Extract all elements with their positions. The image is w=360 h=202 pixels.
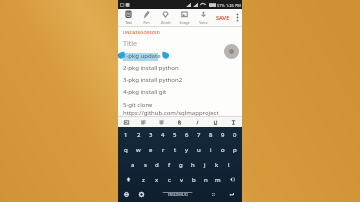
- button[interactable]: n: [200, 172, 212, 187]
- button[interactable]: c: [163, 172, 176, 187]
- staticText: 4: [161, 131, 165, 139]
- button[interactable]: y: [181, 142, 193, 157]
- button[interactable]: q: [119, 142, 132, 157]
- button[interactable]: z: [137, 172, 150, 187]
- staticText: SAVE: [216, 14, 230, 21]
- staticText: 5: [173, 131, 177, 139]
- button[interactable]: e: [145, 142, 157, 157]
- button[interactable]: s: [139, 157, 151, 172]
- button[interactable]: h: [187, 157, 199, 172]
- staticText: 9: [221, 131, 225, 139]
- staticText: a: [131, 161, 135, 169]
- button[interactable]: x: [150, 172, 163, 187]
- staticText: 5-git clone: [123, 101, 153, 109]
- button[interactable]: 1: [119, 127, 132, 142]
- button[interactable]: Space: [151, 189, 204, 200]
- button[interactable]: Voice recording: [224, 44, 239, 59]
- button[interactable]: Bold: [170, 117, 188, 127]
- button[interactable]: Align left: [135, 117, 152, 127]
- staticText: h: [191, 161, 195, 169]
- button[interactable]: 0: [229, 127, 241, 142]
- staticText: ENGLISH(UK): [168, 193, 188, 197]
- button[interactable]: j: [199, 157, 211, 172]
- staticText: 2-pkg install python: [123, 64, 179, 72]
- button[interactable]: Italic: [188, 117, 206, 127]
- staticText: Voice: [199, 20, 208, 25]
- button[interactable]: a: [126, 157, 139, 172]
- staticText: y: [185, 146, 189, 154]
- button[interactable]: Underline: [206, 117, 224, 127]
- button[interactable]: b: [188, 172, 200, 187]
- staticText: 6: [185, 131, 189, 139]
- staticText: e: [149, 146, 153, 154]
- staticText: Brush: [161, 20, 171, 25]
- staticText: w: [136, 146, 141, 154]
- button[interactable]: o: [217, 142, 229, 157]
- staticText: v: [180, 176, 184, 184]
- button[interactable]: f: [163, 157, 175, 172]
- button[interactable]: Insert image: [118, 117, 135, 127]
- button[interactable]: t: [169, 142, 181, 157]
- button[interactable]: Settings: [134, 187, 149, 202]
- button[interactable]: 8: [205, 127, 217, 142]
- button[interactable]: w: [132, 142, 145, 157]
- staticText: t: [174, 146, 177, 154]
- staticText: Text: [125, 20, 132, 25]
- staticText: 2: [137, 131, 141, 139]
- button[interactable]: u: [193, 142, 205, 157]
- staticText: n: [204, 176, 208, 184]
- button[interactable]: r: [157, 142, 169, 157]
- button[interactable]: Backspace: [224, 172, 241, 187]
- staticText: j: [204, 161, 206, 169]
- button[interactable]: 5: [169, 127, 181, 142]
- button[interactable]: Emoji: [206, 187, 221, 202]
- button[interactable]: Voice: [194, 9, 213, 26]
- staticText: r: [162, 146, 165, 154]
- staticText: Image: [179, 20, 190, 25]
- button[interactable]: d: [151, 157, 163, 172]
- button[interactable]: Shift: [119, 172, 137, 187]
- button[interactable]: m: [212, 172, 224, 187]
- staticText: 0: [233, 131, 237, 139]
- button[interactable]: l: [223, 157, 235, 172]
- staticText: l: [228, 161, 230, 169]
- button[interactable]: 7: [193, 127, 205, 142]
- button[interactable]: Pen: [137, 9, 156, 26]
- staticText: f: [168, 161, 171, 169]
- staticText: q: [124, 146, 128, 154]
- button[interactable]: SAVE: [213, 9, 233, 26]
- staticText: u: [197, 146, 201, 154]
- button[interactable]: Brush: [156, 9, 175, 26]
- button[interactable]: Text: [119, 9, 137, 26]
- button[interactable]: 4: [157, 127, 169, 142]
- staticText: i: [210, 146, 212, 154]
- staticText: c: [168, 176, 171, 184]
- button[interactable]: 9: [217, 127, 229, 142]
- staticText: 1-pkg update: [123, 52, 161, 60]
- button[interactable]: Align center: [152, 117, 170, 127]
- button[interactable]: Enter: [221, 187, 241, 202]
- staticText: k: [215, 161, 219, 169]
- button[interactable]: v: [176, 172, 188, 187]
- button[interactable]: 6: [181, 127, 193, 142]
- staticText: g: [179, 161, 183, 169]
- button[interactable]: i: [205, 142, 217, 157]
- button[interactable]: g: [175, 157, 187, 172]
- button[interactable]: 2: [132, 127, 145, 142]
- staticText: UNCATEGORIZED: [123, 30, 160, 36]
- staticText: z: [142, 176, 145, 184]
- staticText: p: [233, 146, 237, 154]
- button[interactable]: Image: [175, 9, 194, 26]
- staticText: https://github.com/sqlmapproject: [123, 109, 219, 116]
- staticText: 4-pkg install git: [123, 88, 167, 96]
- button[interactable]: p: [229, 142, 241, 157]
- button[interactable]: Text colour: [224, 117, 242, 127]
- button[interactable]: Change language: [119, 187, 134, 202]
- button[interactable]: 3: [145, 127, 157, 142]
- staticText: o: [221, 146, 225, 154]
- staticText: d: [155, 161, 159, 169]
- staticText: Pen: [143, 20, 150, 25]
- staticText: 1: [124, 131, 128, 139]
- button[interactable]: More options: [233, 9, 241, 26]
- button[interactable]: k: [211, 157, 223, 172]
